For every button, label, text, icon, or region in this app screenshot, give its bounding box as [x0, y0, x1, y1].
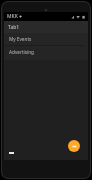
staticText: My Events [9, 36, 32, 42]
staticText: Advertising [9, 49, 34, 55]
button[interactable]: Add [68, 140, 80, 152]
button[interactable]: My Events [4, 33, 88, 46]
staticText: Tab1 [8, 24, 20, 31]
staticText: MKK [7, 13, 18, 20]
button[interactable]: Advertising [4, 46, 88, 60]
